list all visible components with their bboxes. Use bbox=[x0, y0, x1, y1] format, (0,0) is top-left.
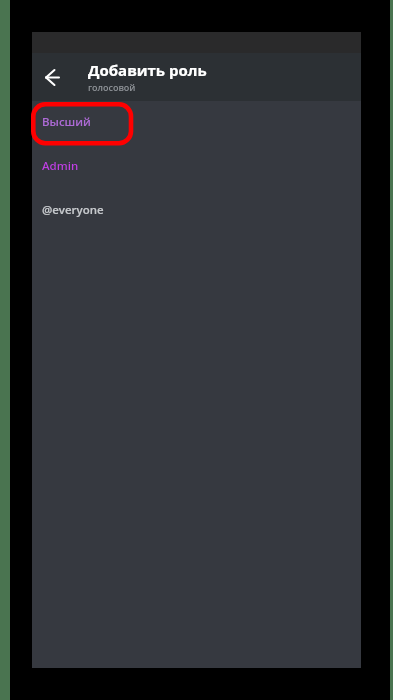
button[interactable]: Высший bbox=[32, 100, 361, 144]
staticText: голосовой bbox=[88, 81, 136, 93]
button[interactable]: Back bbox=[36, 61, 68, 93]
staticText: Добавить роль bbox=[88, 60, 207, 80]
staticText: Высший bbox=[42, 114, 91, 130]
staticText: Admin bbox=[42, 158, 79, 174]
button[interactable]: @everyone bbox=[32, 188, 361, 232]
button[interactable]: Admin bbox=[32, 144, 361, 188]
staticText: @everyone bbox=[42, 202, 104, 218]
